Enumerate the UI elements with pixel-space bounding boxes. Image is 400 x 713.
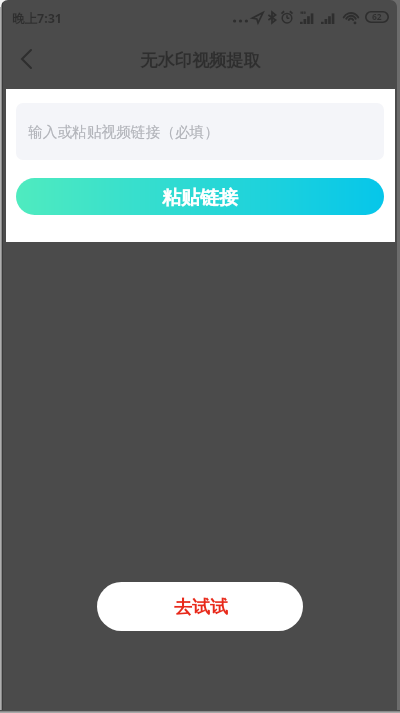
- staticText: 粘贴链接: [162, 186, 238, 210]
- staticText: 去试试: [174, 596, 228, 619]
- staticText: 输入或粘贴视频链接（必填）: [28, 123, 219, 142]
- button[interactable]: 输入或粘贴视频链接（必填）: [16, 103, 384, 160]
- button[interactable]: Back: [2, 37, 50, 85]
- button[interactable]: 粘贴链接: [16, 178, 384, 215]
- button[interactable]: 去试试: [97, 582, 303, 631]
- staticText: 62: [372, 11, 382, 23]
- staticText: 晚上7:31: [12, 10, 62, 27]
- staticText: 无水印视频提取: [140, 49, 261, 71]
